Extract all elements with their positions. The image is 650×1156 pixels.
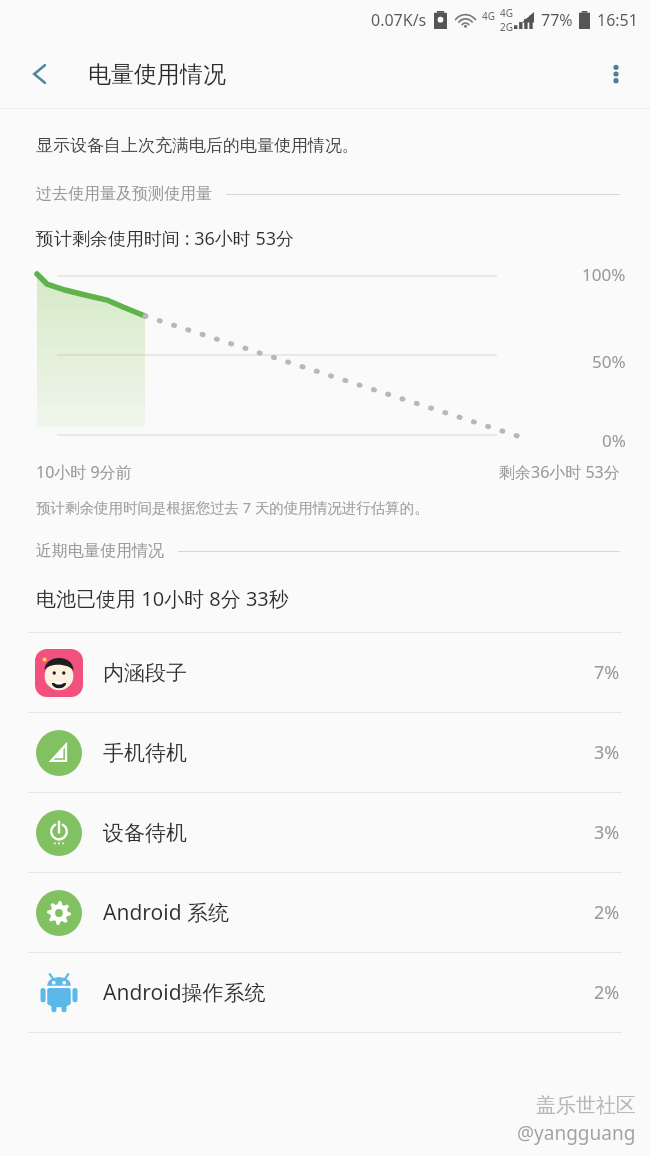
button[interactable]: 设备待机 bbox=[0, 793, 650, 872]
staticText: 50% bbox=[592, 350, 626, 373]
staticText: 2% bbox=[594, 900, 620, 925]
staticText: 电池已使用 10小时 8分 33秒 bbox=[36, 585, 289, 612]
staticText: 2G bbox=[500, 20, 513, 34]
staticText: 7% bbox=[594, 660, 620, 685]
staticText: 0% bbox=[602, 429, 626, 450]
staticText: 2% bbox=[594, 980, 620, 1005]
staticText: 显示设备自上次充满电后的电量使用情况。 bbox=[36, 135, 359, 156]
staticText: 内涵段子 bbox=[103, 660, 187, 686]
staticText: Android操作系统 bbox=[103, 978, 266, 1007]
staticText: 3% bbox=[594, 820, 620, 845]
staticText: 100% bbox=[582, 263, 626, 286]
staticText: 设备待机 bbox=[103, 820, 187, 846]
staticText: 4G bbox=[482, 9, 495, 23]
staticText: 3% bbox=[594, 740, 620, 765]
staticText: 预计剩余使用时间是根据您过去 7 天的使用情况进行估算的。 bbox=[36, 497, 429, 517]
button[interactable]: Android操作系统 bbox=[0, 953, 650, 1032]
staticText: 电量使用情况 bbox=[88, 60, 226, 89]
button[interactable]: Android 系统 bbox=[0, 873, 650, 952]
staticText: 4G bbox=[500, 6, 513, 20]
staticText: 近期电量使用情况 bbox=[36, 541, 164, 561]
button[interactable]: 手机待机 bbox=[0, 713, 650, 792]
staticText: 16:51 bbox=[597, 9, 638, 31]
staticText: 盖乐世社区 bbox=[536, 1093, 636, 1118]
button[interactable]: 内涵段子 bbox=[0, 633, 650, 712]
staticText: 手机待机 bbox=[103, 740, 187, 766]
staticText: 过去使用量及预测使用量 bbox=[36, 184, 212, 204]
button[interactable]: Back bbox=[16, 50, 64, 98]
button[interactable]: More options bbox=[592, 50, 640, 98]
staticText: @yangguang bbox=[517, 1120, 636, 1146]
staticText: Android 系统 bbox=[103, 898, 230, 927]
staticText: 10小时 9分前 bbox=[36, 461, 132, 483]
staticText: 77% bbox=[541, 9, 573, 31]
staticText: 0.07K/s bbox=[371, 9, 427, 31]
staticText: 预计剩余使用时间 : 36小时 53分 bbox=[36, 226, 295, 251]
staticText: 剩余36小时 53分 bbox=[499, 461, 620, 483]
